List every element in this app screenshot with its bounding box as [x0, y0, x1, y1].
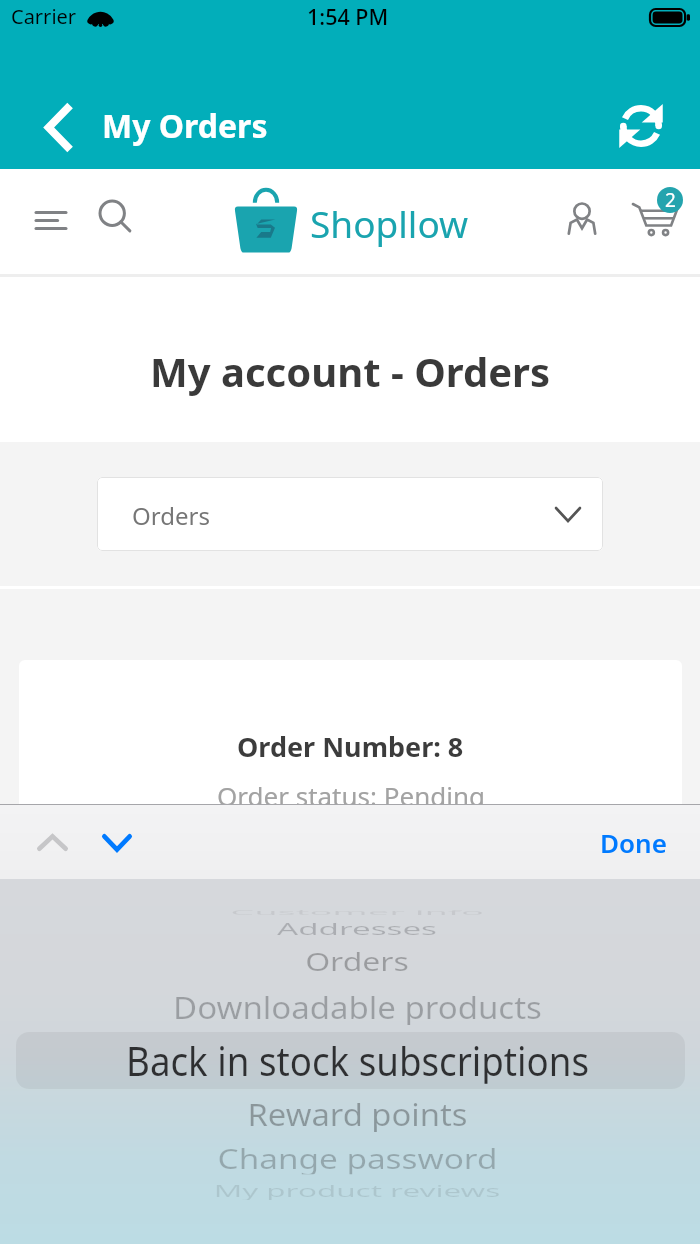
button[interactable]: Orders: [7, 937, 700, 983]
staticText: Orders: [305, 944, 409, 976]
button[interactable]: Change password: [7, 1134, 700, 1180]
staticText: Orders: [132, 499, 210, 532]
button[interactable]: Cart: [620, 181, 692, 257]
staticText: My product reviews: [213, 1180, 501, 1200]
staticText: Change password: [217, 1140, 498, 1174]
button[interactable]: Search: [86, 187, 146, 247]
button[interactable]: Account: [552, 189, 612, 249]
staticText: 1:54 PM: [307, 2, 389, 31]
button[interactable]: Orders: [97, 477, 603, 551]
staticText: Back in stock subscriptions: [126, 1034, 589, 1084]
button[interactable]: Customer info: [7, 889, 700, 935]
button[interactable]: Reward points: [7, 1089, 700, 1135]
staticText: Done: [600, 825, 667, 860]
staticText: Customer info: [230, 907, 484, 917]
staticText: Downloadable products: [173, 985, 542, 1025]
button[interactable]: My product reviews: [7, 1167, 700, 1213]
staticText: Order status: Pending: [217, 778, 485, 813]
staticText: My Orders: [102, 104, 268, 148]
staticText: 2: [665, 187, 676, 213]
staticText: My account - Orders: [150, 344, 550, 398]
button[interactable]: Done: [574, 811, 693, 874]
button[interactable]: Downloadable products: [7, 982, 700, 1028]
staticText: Carrier: [11, 3, 77, 30]
button[interactable]: Previous: [16, 810, 88, 874]
button[interactable]: Refresh: [609, 94, 673, 158]
button[interactable]: Back: [30, 95, 86, 159]
staticText: Reward points: [247, 1092, 468, 1132]
staticText: Order Number: 8: [237, 728, 464, 765]
button[interactable]: Next: [81, 811, 153, 875]
button[interactable]: Order Number: 8: [19, 660, 682, 920]
staticText: Addresses: [277, 918, 437, 938]
button[interactable]: Shopllow: [310, 198, 469, 248]
button[interactable]: Addresses: [7, 905, 700, 951]
button[interactable]: Back in stock subscriptions: [7, 1036, 700, 1082]
button[interactable]: Menu: [21, 190, 81, 250]
